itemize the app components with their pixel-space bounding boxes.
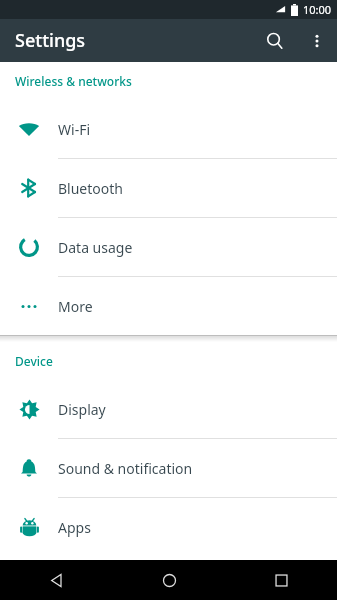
button[interactable]: Sound & notification [0, 439, 337, 498]
staticText: Bluetooth [58, 179, 123, 198]
staticText: Wireless & networks [15, 73, 132, 89]
staticText: Data usage [58, 238, 133, 257]
staticText: Sound & notification [58, 459, 193, 478]
staticText: Display [58, 400, 106, 419]
button[interactable]: More [0, 277, 337, 335]
button[interactable]: Search [253, 19, 297, 62]
button[interactable]: Recent apps [225, 560, 337, 600]
button[interactable]: Back [0, 560, 113, 600]
button[interactable]: Apps [0, 498, 337, 556]
staticText: Apps [58, 518, 91, 537]
button[interactable]: Bluetooth [0, 159, 337, 218]
button[interactable]: Wi-Fi [0, 100, 337, 159]
staticText: 10:00 [303, 2, 332, 17]
staticText: More [58, 297, 93, 316]
button[interactable]: Data usage [0, 218, 337, 277]
button[interactable]: More options [297, 21, 337, 61]
button[interactable]: Display [0, 380, 337, 439]
staticText: Settings [15, 28, 86, 53]
staticText: Device [15, 353, 53, 369]
button[interactable]: Home [113, 560, 225, 600]
staticText: Wi-Fi [58, 120, 91, 139]
